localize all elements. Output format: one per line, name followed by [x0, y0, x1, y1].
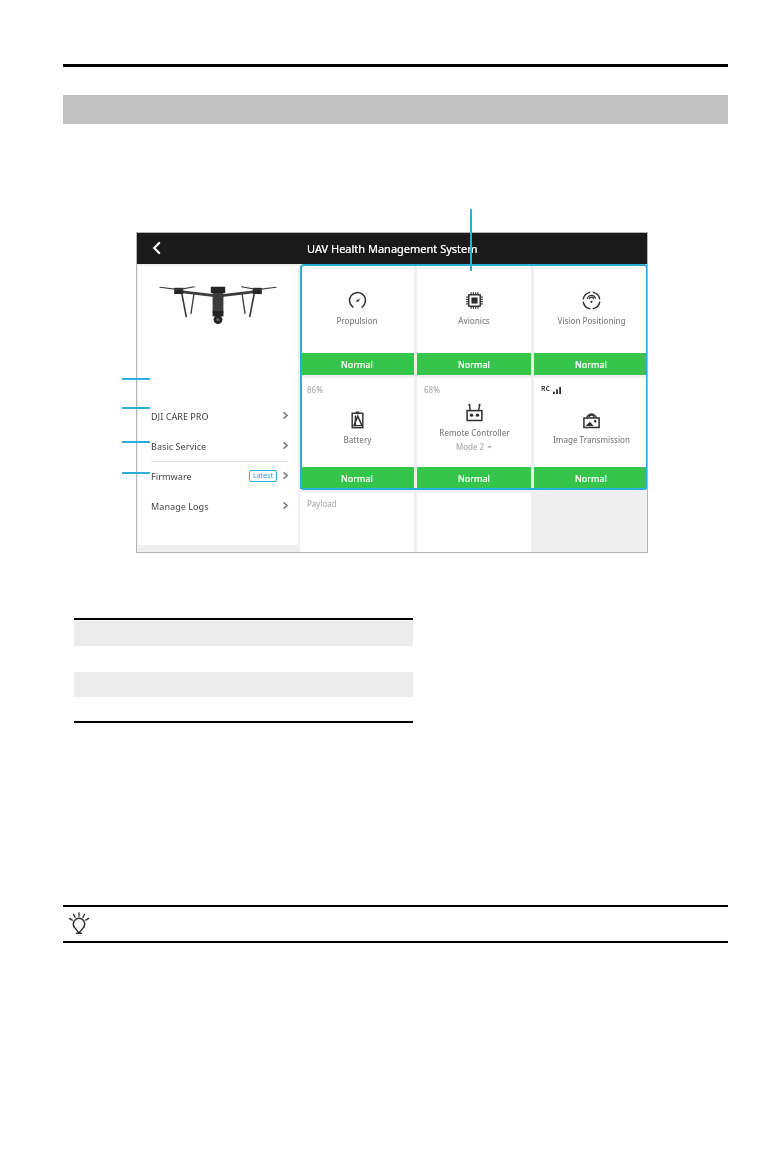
- staticText: Firmware: [151, 470, 192, 482]
- button[interactable]: 68%: [417, 378, 531, 489]
- staticText: Image Transmission: [553, 434, 630, 445]
- staticText: Basic Service: [151, 440, 207, 452]
- staticText: 68%: [424, 384, 440, 395]
- button[interactable]: Propulsion: [300, 264, 414, 375]
- button[interactable]: Vision Positioning: [534, 264, 648, 375]
- button[interactable]: Firmware: [138, 465, 298, 486]
- staticText: Payload: [307, 498, 337, 509]
- staticText: Battery: [343, 434, 372, 445]
- button[interactable]: Back: [146, 237, 168, 259]
- staticText: RC: [541, 384, 551, 394]
- button[interactable]: Manage Logs: [138, 495, 298, 516]
- staticText: UAV Health Management System: [307, 241, 478, 256]
- button[interactable]: Basic Service: [138, 435, 298, 456]
- staticText: Normal: [341, 472, 373, 484]
- button[interactable]: DJI CARE PRO: [138, 405, 298, 426]
- staticText: Manage Logs: [151, 500, 209, 512]
- button[interactable]: Avionics: [417, 264, 531, 375]
- staticText: Latest: [253, 471, 273, 481]
- staticText: Mode 2: [456, 441, 485, 452]
- staticText: Remote Controller: [439, 427, 510, 438]
- staticText: 86%: [307, 384, 323, 395]
- button[interactable]: 86%: [300, 378, 414, 489]
- staticText: Normal: [341, 358, 373, 370]
- staticText: Normal: [458, 358, 490, 370]
- staticText: DJI CARE PRO: [151, 410, 209, 422]
- staticText: Vision Positioning: [557, 315, 626, 326]
- staticText: Normal: [575, 472, 607, 484]
- staticText: Propulsion: [336, 315, 378, 326]
- staticText: Avionics: [458, 315, 490, 326]
- staticText: Normal: [575, 358, 607, 370]
- button[interactable]: RC: [534, 378, 648, 489]
- staticText: Normal: [458, 472, 490, 484]
